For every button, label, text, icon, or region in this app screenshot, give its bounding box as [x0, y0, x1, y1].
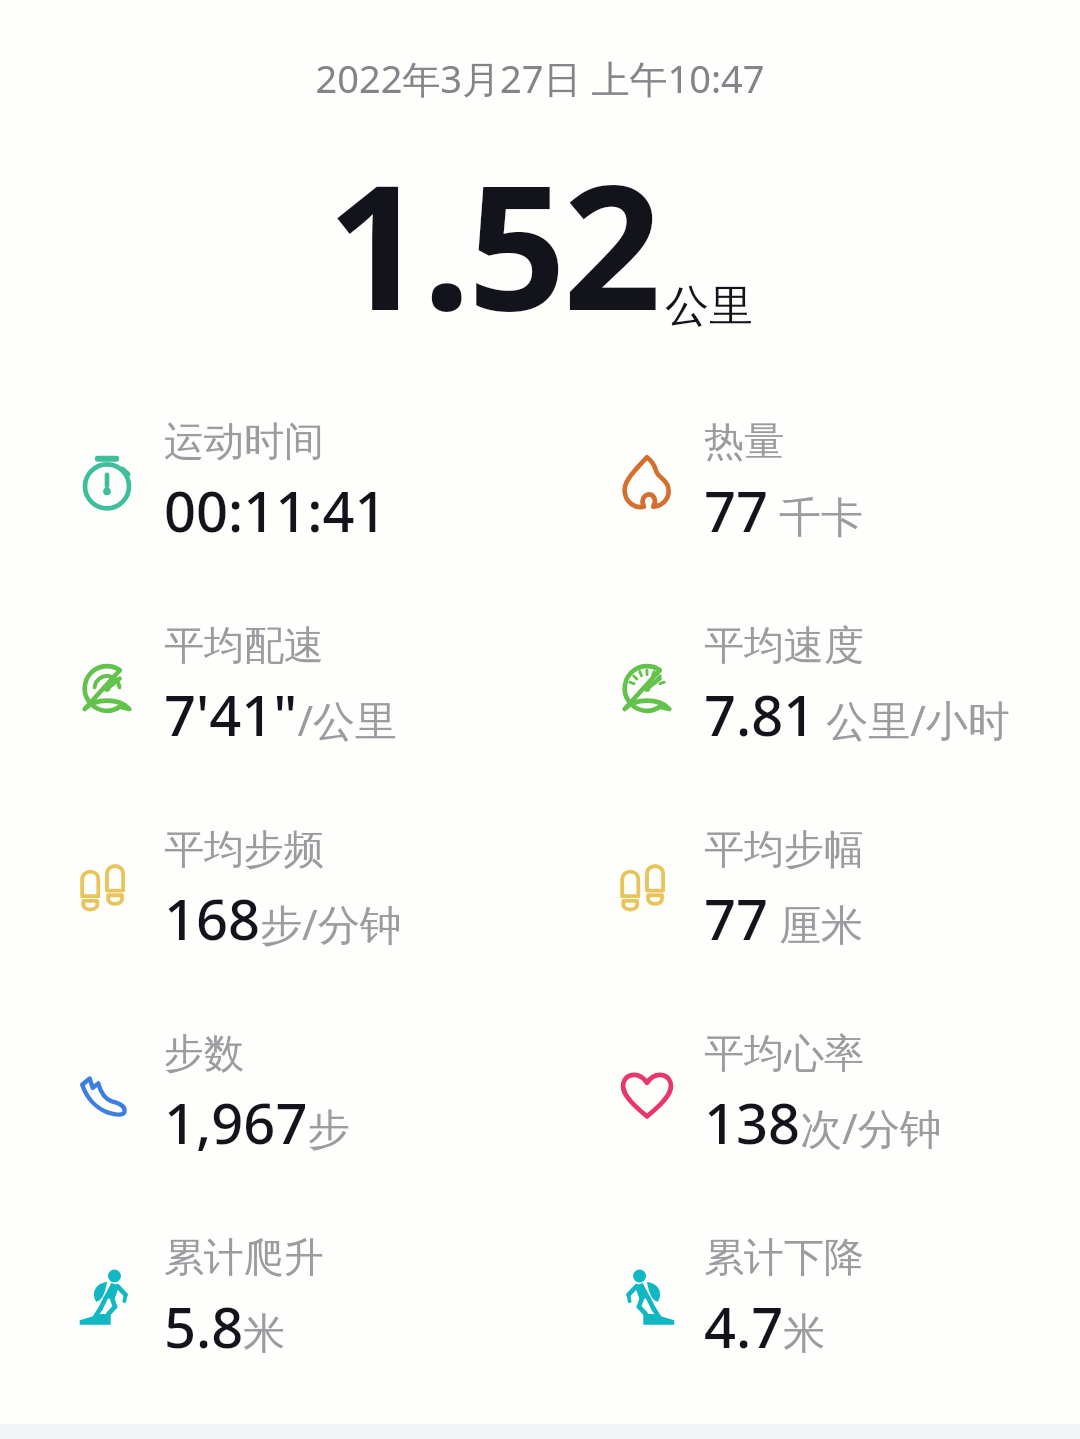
staticText: 1.52 — [327, 126, 659, 360]
staticText: 2022年3月27日 上午10:47 — [0, 52, 1080, 104]
staticText: 7'41"/公里 — [164, 676, 398, 752]
button[interactable]: 步数 — [0, 1028, 540, 1160]
other: 步数 — [76, 1063, 138, 1125]
other: 热量 — [616, 451, 678, 513]
staticText: 热量 — [704, 416, 784, 466]
button[interactable]: 平均速度 — [540, 620, 1080, 752]
button[interactable]: 累计下降 — [540, 1232, 1080, 1364]
staticText: 00:11:41 — [164, 472, 387, 548]
staticText: 累计下降 — [704, 1232, 864, 1282]
staticText: 5.8米 — [164, 1288, 286, 1364]
button[interactable]: 累计爬升 — [0, 1232, 540, 1364]
staticText: 1,967步 — [164, 1084, 350, 1160]
other: 平均速度 — [616, 655, 678, 717]
other: 平均步幅 — [616, 859, 678, 921]
staticText: 平均步幅 — [704, 824, 864, 874]
staticText: 步数 — [164, 1028, 244, 1078]
staticText: 7.81 公里/小时 — [704, 676, 1010, 752]
staticText: 平均速度 — [704, 620, 864, 670]
button[interactable]: 热量 — [540, 416, 1080, 548]
other: 累计下降 — [616, 1267, 678, 1329]
staticText: 平均步频 — [164, 824, 324, 874]
button[interactable]: 运动时间 — [0, 416, 540, 548]
other: 平均心率 — [616, 1063, 678, 1125]
staticText: 运动时间 — [164, 416, 324, 466]
staticText: 77 厘米 — [704, 880, 863, 956]
staticText: 77 千卡 — [704, 472, 863, 548]
other: 平均步频 — [76, 859, 138, 921]
button[interactable]: 平均心率 — [540, 1028, 1080, 1160]
button[interactable]: 平均步频 — [0, 824, 540, 956]
other: 运动时间 — [76, 451, 138, 513]
other: 累计爬升 — [76, 1267, 138, 1329]
staticText: 公里 — [665, 279, 753, 334]
staticText: 168步/分钟 — [164, 880, 402, 956]
staticText: 平均心率 — [704, 1028, 864, 1078]
staticText: 4.7米 — [704, 1288, 826, 1364]
staticText: 累计爬升 — [164, 1232, 324, 1282]
staticText: 平均配速 — [164, 620, 324, 670]
other: 平均配速 — [76, 655, 138, 717]
button[interactable]: 平均步幅 — [540, 824, 1080, 956]
button[interactable]: 平均配速 — [0, 620, 540, 752]
staticText: 138次/分钟 — [704, 1084, 942, 1160]
